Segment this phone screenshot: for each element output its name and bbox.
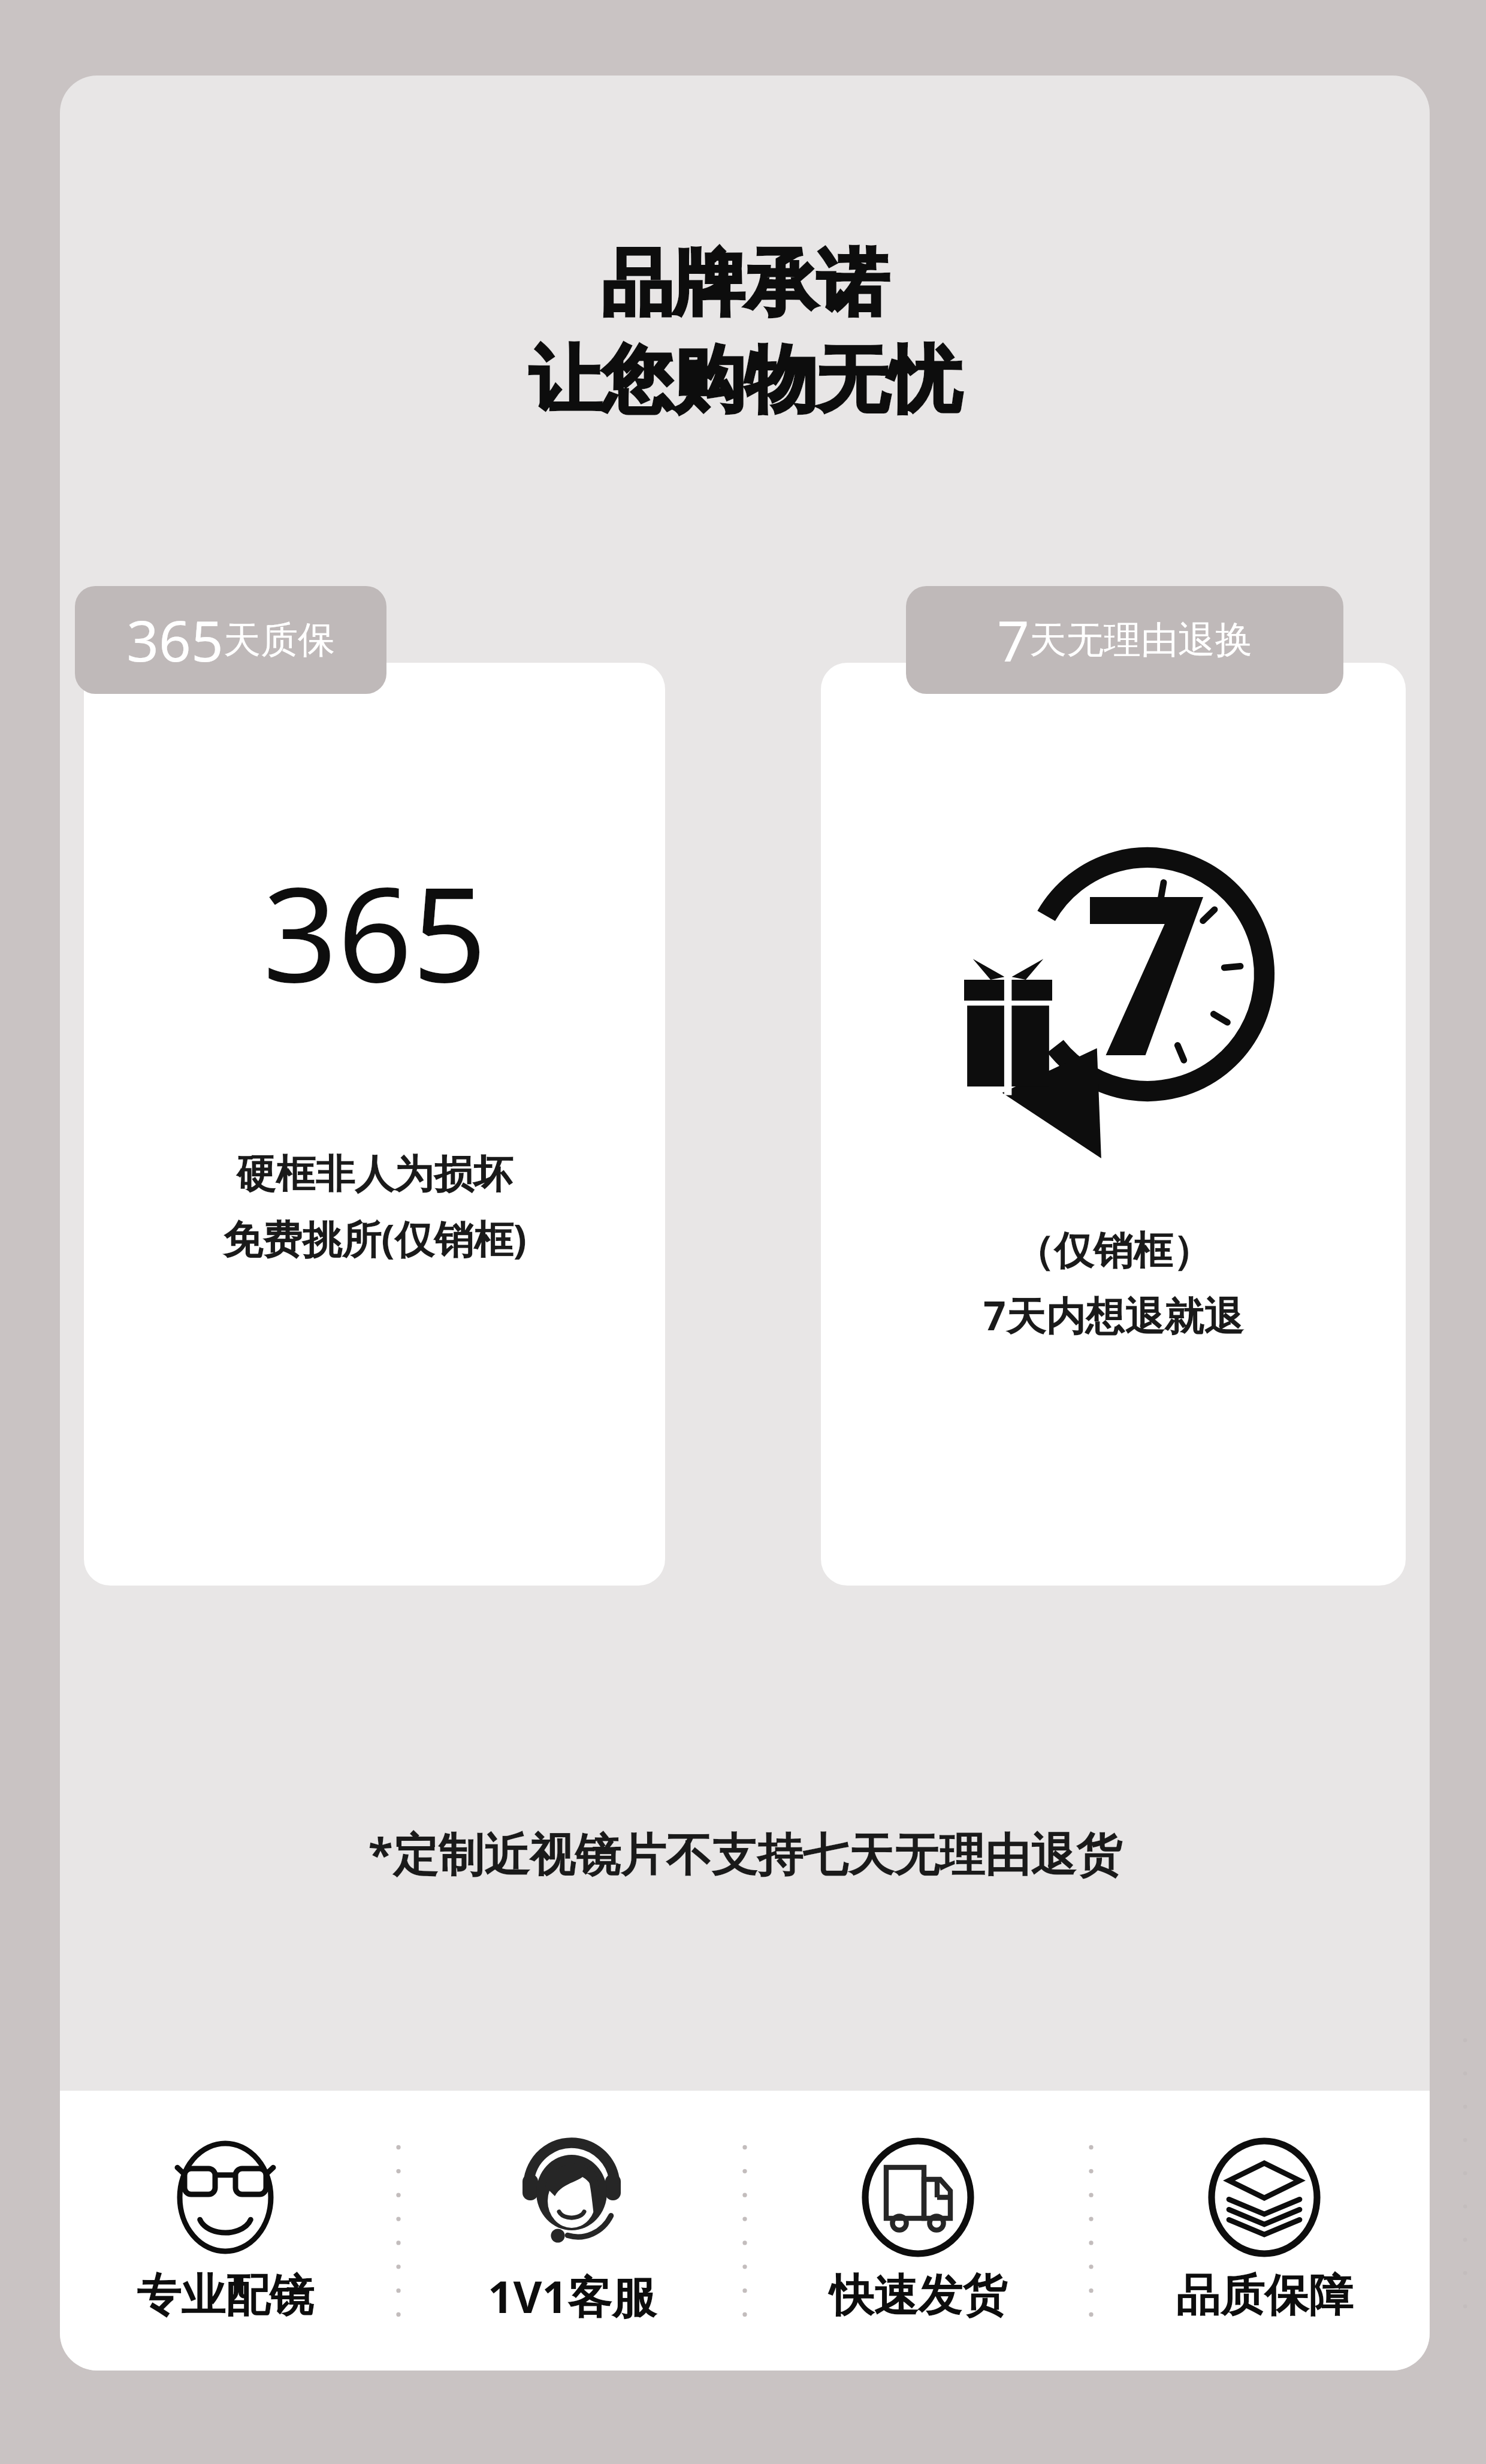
staticText: 365	[126, 602, 223, 678]
staticText: 免费挑所(仅销框)	[223, 1211, 527, 1265]
button[interactable]: 7天无理由退换	[821, 663, 1406, 1586]
staticText: *定制近视镜片不支持七天无理由退货	[368, 1822, 1122, 1885]
button[interactable]: 365	[75, 586, 386, 694]
staticText: （仅销框）	[1014, 1226, 1212, 1276]
other: 1V1客服	[512, 2135, 632, 2255]
staticText: 365	[262, 843, 487, 1020]
staticText: 1V1客服	[488, 2266, 656, 2326]
other: 专业配镜	[165, 2137, 285, 2257]
button[interactable]: 365	[84, 663, 665, 1586]
other: 7天无理由退换	[934, 804, 1293, 1163]
button[interactable]: 1V1客服	[406, 2091, 737, 2371]
staticText: 7	[997, 602, 1029, 678]
staticText: 品质保障	[1176, 2268, 1353, 2324]
staticText: 品牌承诺	[601, 238, 889, 329]
staticText: 硬框非人为损坏	[236, 1149, 513, 1199]
button[interactable]: 专业配镜	[60, 2091, 391, 2371]
other: 快速发货	[858, 2137, 978, 2257]
staticText: 7天内想退就退	[983, 1288, 1243, 1342]
button[interactable]: 快速发货	[753, 2091, 1083, 2371]
button[interactable]: 品质保障	[1099, 2091, 1430, 2371]
staticText: 专业配镜	[137, 2268, 314, 2324]
staticText: 天质保	[223, 617, 335, 663]
other: 品质保障	[1204, 2137, 1324, 2257]
staticText: 让您购物无忧	[529, 335, 961, 425]
staticText: 天无理由退换	[1029, 617, 1252, 663]
button[interactable]: 7	[906, 586, 1343, 694]
staticText: 快速发货	[829, 2268, 1007, 2324]
